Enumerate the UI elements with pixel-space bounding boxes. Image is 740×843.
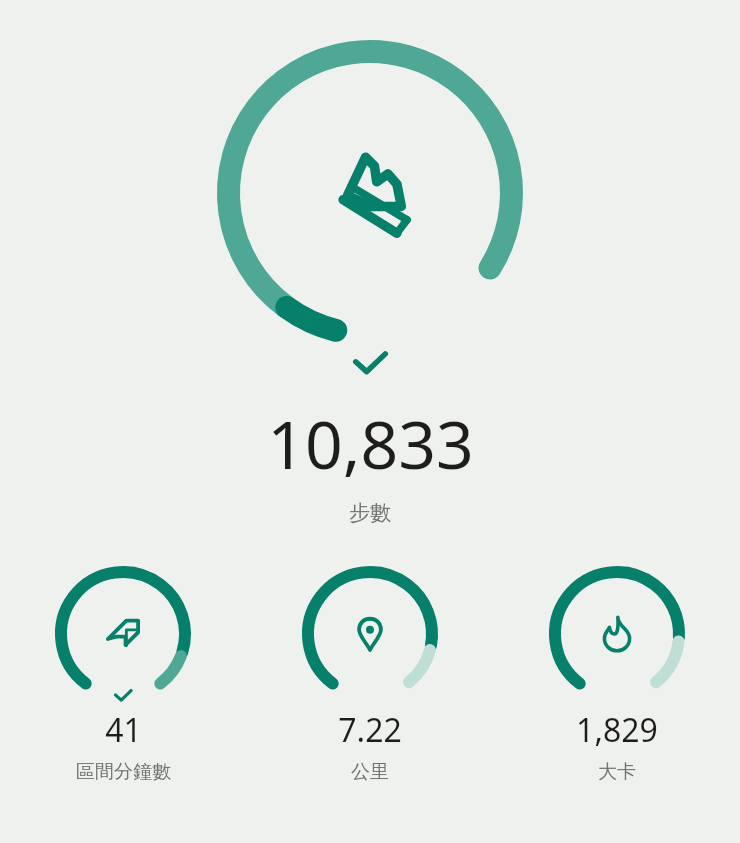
button[interactable]: Distance — [246, 566, 493, 784]
button[interactable]: Steps progress — [217, 40, 523, 346]
staticText: 1,829 — [576, 708, 658, 752]
staticText: 10,833 — [267, 398, 474, 488]
button[interactable]: Zone minutes — [0, 566, 246, 784]
staticText: 7.22 — [338, 708, 402, 752]
button[interactable]: Calories — [493, 566, 740, 784]
staticText: 大卡 — [598, 760, 636, 784]
staticText: 區間分鐘數 — [76, 760, 171, 784]
staticText: 公里 — [351, 760, 389, 784]
staticText: 41 — [105, 708, 142, 752]
staticText: 步數 — [349, 500, 391, 526]
